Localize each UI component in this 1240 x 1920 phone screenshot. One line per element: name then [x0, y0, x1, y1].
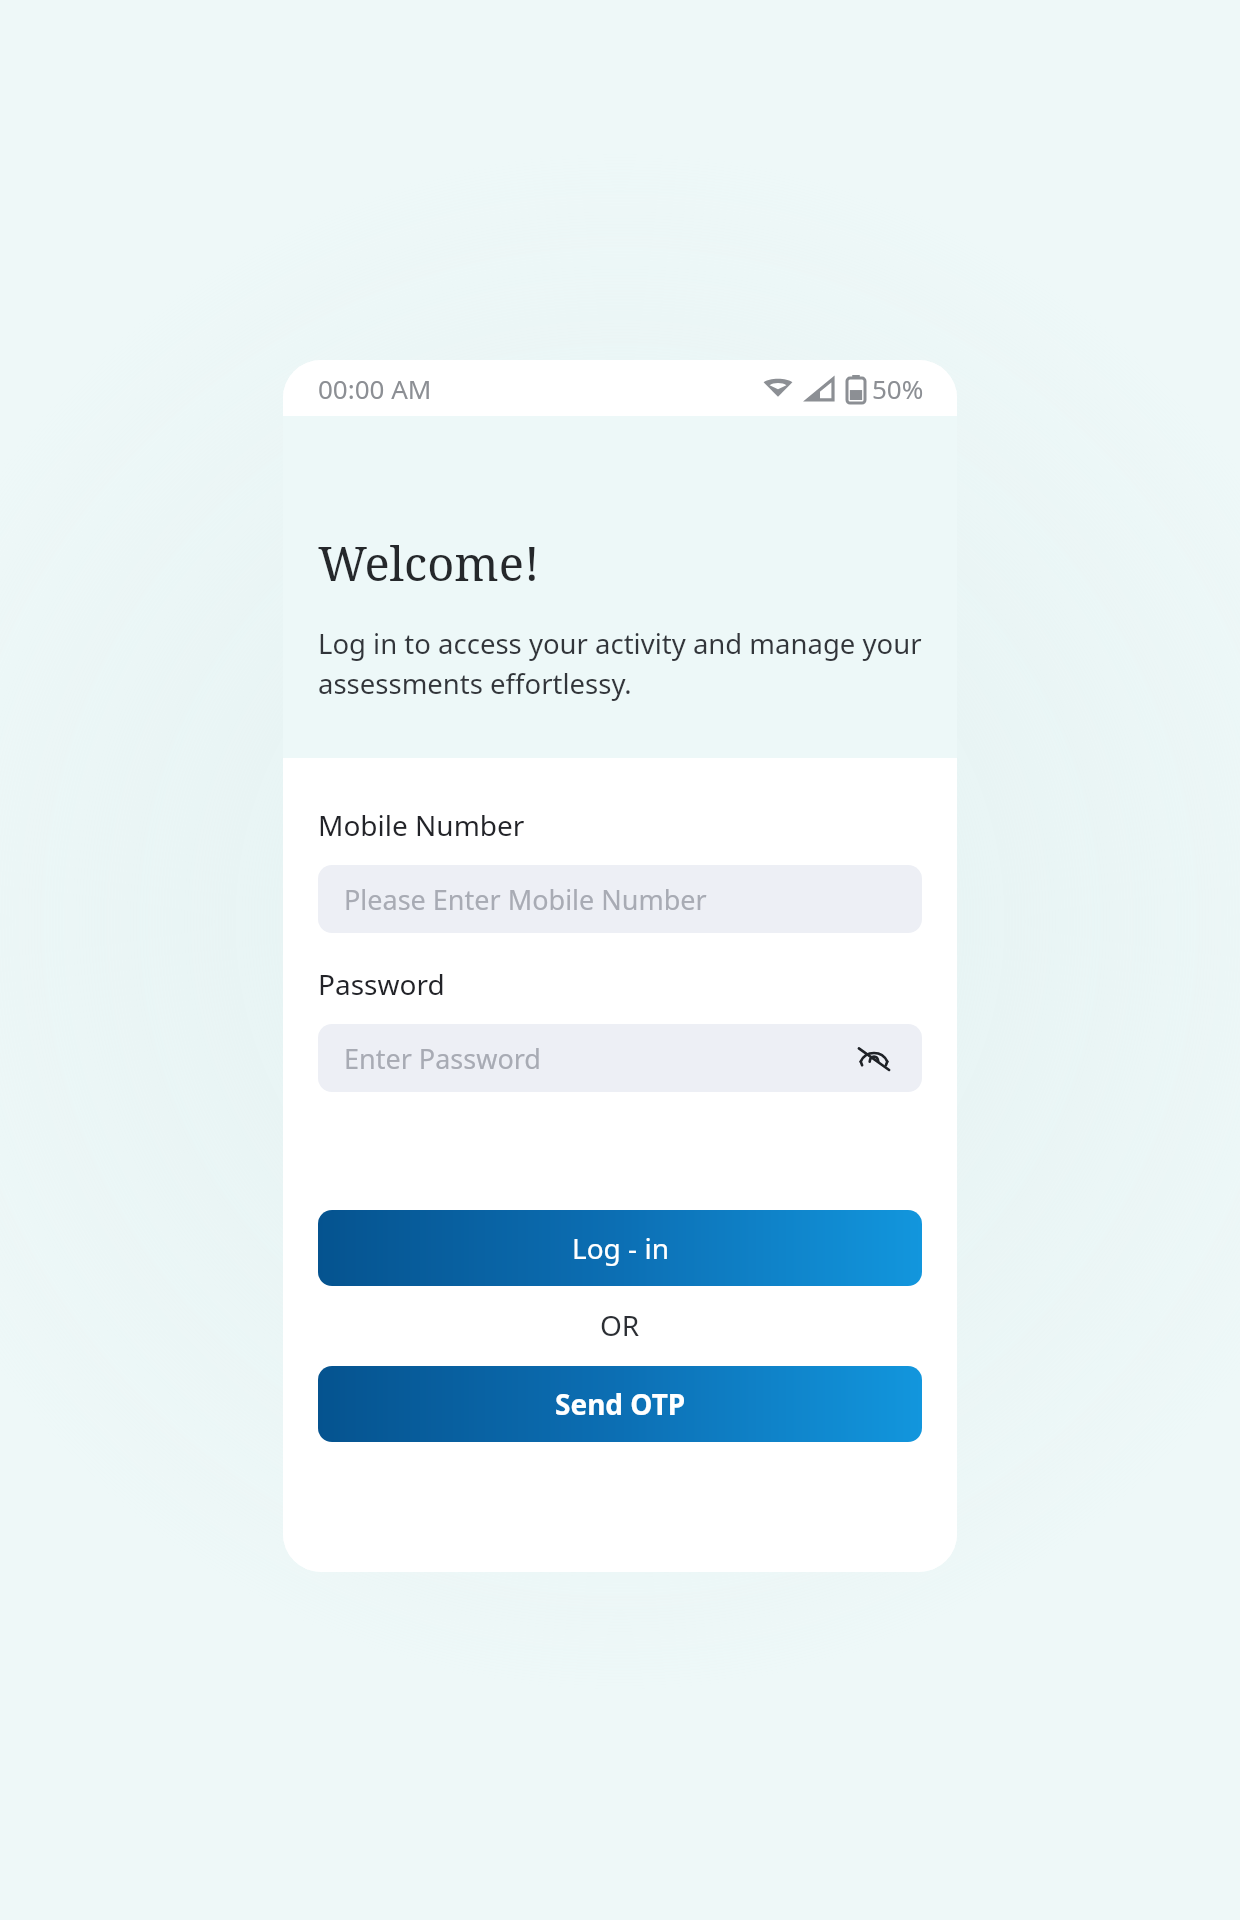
staticText: Password — [318, 965, 445, 1003]
button[interactable]: Show password — [852, 1036, 896, 1080]
staticText: Welcome! — [318, 531, 540, 595]
button[interactable]: Enter Password — [318, 1024, 922, 1092]
staticText: OR — [600, 1306, 640, 1344]
staticText: Log in to access your activity and manag… — [318, 625, 922, 702]
staticText: 00:00 AM — [318, 371, 432, 406]
button[interactable]: Log - in — [318, 1210, 922, 1286]
staticText: Please Enter Mobile Number — [344, 881, 707, 918]
staticText: Send OTP — [555, 1385, 686, 1423]
staticText: Enter Password — [344, 1040, 541, 1077]
button[interactable]: Send OTP — [318, 1366, 922, 1442]
button[interactable]: Please Enter Mobile Number — [318, 865, 922, 933]
staticText: 50% — [872, 371, 924, 406]
staticText: Mobile Number — [318, 806, 525, 844]
staticText: Log - in — [572, 1229, 669, 1267]
